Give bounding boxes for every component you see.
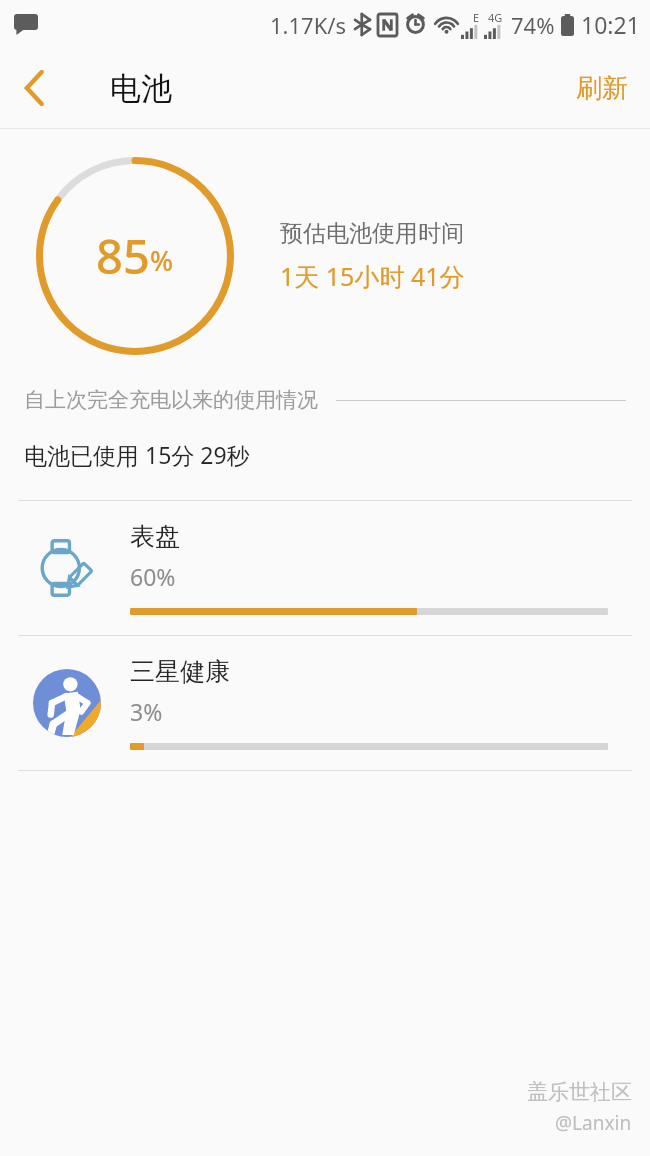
staticText: 表盘 <box>130 521 180 552</box>
staticText: 自上次完全充电以来的使用情况 <box>24 387 318 413</box>
staticText: @Lanxin <box>555 1110 632 1136</box>
staticText: 60% <box>130 561 176 592</box>
staticText: 预估电池使用时间 <box>280 219 464 248</box>
staticText: 电池 <box>110 69 172 108</box>
staticText: 刷新 <box>576 72 628 105</box>
staticText: 1.17K/s <box>270 10 346 40</box>
staticText: 74% <box>511 10 555 40</box>
staticText: 电池已使用 15分 29秒 <box>24 439 250 470</box>
staticText: 三星健康 <box>130 656 230 687</box>
staticText: 盖乐世社区 <box>527 1079 632 1105</box>
button[interactable]: 表盘 <box>0 501 650 635</box>
staticText: E <box>473 10 480 25</box>
staticText: % <box>150 242 174 279</box>
staticText: 85 <box>96 224 150 288</box>
button[interactable]: Back <box>0 48 68 128</box>
staticText: 10:21 <box>581 9 640 40</box>
button[interactable]: 三星健康 <box>0 636 650 770</box>
staticText: 4G <box>488 10 503 25</box>
staticText: 3% <box>130 696 163 727</box>
button[interactable]: 刷新 <box>554 48 650 128</box>
staticText: 1天 15小时 41分 <box>280 259 465 293</box>
